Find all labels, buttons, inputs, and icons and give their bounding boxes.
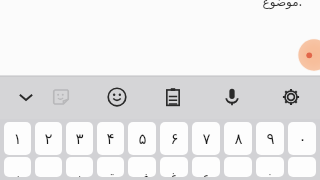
button[interactable]: ۰ (288, 122, 316, 155)
button[interactable]: ف (128, 157, 156, 177)
button[interactable]: Settings (274, 80, 308, 114)
button[interactable]: ق (97, 157, 124, 177)
button[interactable]: ۲ (35, 122, 62, 155)
button[interactable]: ۱ (4, 122, 31, 155)
staticText: ث (73, 170, 87, 177)
button[interactable]: ض (4, 157, 31, 177)
staticText: ۸ (234, 130, 243, 147)
staticText: ف (135, 170, 150, 177)
button[interactable]: ۹ (256, 122, 284, 155)
button[interactable]: خ (256, 157, 284, 177)
staticText: ۵ (138, 130, 147, 147)
staticText: ق (105, 170, 116, 177)
staticText: ۶ (170, 130, 179, 147)
button[interactable]: Voice input (215, 80, 249, 114)
button[interactable]: ه (224, 157, 252, 177)
staticText: غ (170, 170, 179, 177)
staticText: ۰ (298, 130, 307, 147)
button[interactable]: Collapse keyboard (9, 80, 43, 114)
button[interactable]: ۶ (160, 122, 188, 155)
button[interactable]: Clipboard (156, 80, 190, 114)
staticText: ۱ (13, 130, 22, 147)
staticText: ۲ (44, 130, 53, 147)
button[interactable]: ۴ (97, 122, 124, 155)
button[interactable]: Compose (297, 38, 320, 72)
staticText: ۴ (106, 130, 115, 147)
staticText: ۷ (202, 130, 211, 147)
staticText: ع (202, 170, 211, 177)
button[interactable]: ۵ (128, 122, 156, 155)
button[interactable]: ث (66, 157, 93, 177)
button[interactable]: ص (35, 157, 62, 177)
button[interactable]: ۷ (192, 122, 220, 155)
button[interactable]: ح (288, 157, 316, 177)
staticText: ض (9, 170, 26, 177)
staticText: ۹ (266, 130, 275, 147)
button[interactable]: ع (192, 157, 220, 177)
button[interactable]: غ (160, 157, 188, 177)
staticText: خ (265, 170, 275, 177)
button[interactable]: ۳ (66, 122, 93, 155)
button[interactable]: Stickers (44, 80, 78, 114)
staticText: موضوع. (262, 0, 302, 9)
staticText: ۳ (75, 130, 84, 147)
button[interactable]: ۸ (224, 122, 252, 155)
button[interactable]: Emoji (100, 80, 134, 114)
